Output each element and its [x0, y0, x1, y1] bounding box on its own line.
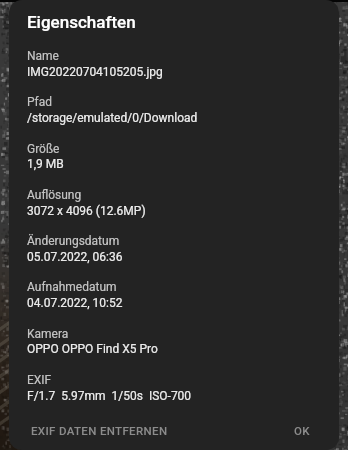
staticText: Aufnahmedatum — [27, 280, 117, 294]
staticText: Kamera — [27, 327, 69, 341]
staticText: F/1.7 5.97mm 1/50s ISO-700 — [27, 389, 192, 403]
staticText: EXIF DATEN ENTFERNEN — [31, 424, 168, 437]
staticText: 3072 x 4096 (12.6MP) — [27, 204, 146, 218]
staticText: OK — [294, 424, 310, 437]
staticText: Pfad — [27, 95, 53, 109]
staticText: IMG20220704105205.jpg — [27, 65, 163, 79]
staticText: Auflösung — [27, 188, 82, 202]
staticText: Größe — [27, 142, 60, 156]
staticText: /storage/emulated/0/Download — [27, 111, 198, 125]
staticText: EXIF — [27, 373, 52, 387]
staticText: 1,9 MB — [27, 157, 64, 171]
button[interactable]: EXIF DATEN ENTFERNEN — [27, 417, 172, 444]
staticText: Name — [27, 49, 59, 63]
staticText: OPPO OPPO Find X5 Pro — [27, 342, 158, 356]
staticText: Eigenschaften — [27, 12, 136, 32]
staticText: Änderungsdatum — [27, 234, 120, 248]
staticText: 05.07.2022, 06:36 — [27, 250, 123, 264]
button[interactable]: OK — [286, 417, 318, 444]
staticText: 04.07.2022, 10:52 — [27, 296, 123, 310]
